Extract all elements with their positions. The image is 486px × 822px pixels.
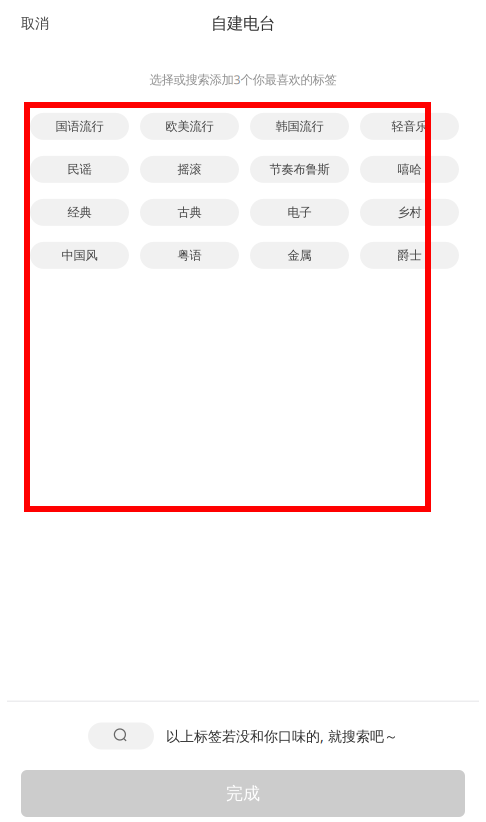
button[interactable]: 欧美流行 xyxy=(140,113,239,140)
staticText: 古典 xyxy=(177,205,201,220)
button[interactable]: 摇滚 xyxy=(140,156,239,183)
staticText: 爵士 xyxy=(397,248,421,263)
staticText: 电子 xyxy=(287,205,311,220)
staticText: 以上标签若没和你口味的, 就搜索吧～ xyxy=(166,726,398,746)
button[interactable]: 节奏布鲁斯 xyxy=(250,156,349,183)
staticText: 自建电台 xyxy=(211,13,275,34)
button[interactable]: 嘻哈 xyxy=(360,156,459,183)
staticText: 金属 xyxy=(287,248,311,263)
button[interactable]: 金属 xyxy=(250,242,349,269)
staticText: 中国风 xyxy=(61,248,97,263)
button[interactable]: 乡村 xyxy=(360,199,459,226)
staticText: 完成 xyxy=(226,783,260,804)
staticText: 欧美流行 xyxy=(165,119,213,134)
staticText: 经典 xyxy=(67,205,91,220)
button[interactable]: 经典 xyxy=(30,199,129,226)
staticText: 摇滚 xyxy=(177,162,201,177)
staticText: 轻音乐 xyxy=(391,119,427,134)
button[interactable]: 民谣 xyxy=(30,156,129,183)
staticText: 取消 xyxy=(21,15,49,32)
staticText: 嘻哈 xyxy=(397,162,421,177)
button[interactable]: 取消 xyxy=(13,9,57,38)
button[interactable]: 爵士 xyxy=(360,242,459,269)
button[interactable]: 轻音乐 xyxy=(360,113,459,140)
staticText: 国语流行 xyxy=(55,119,103,134)
button[interactable]: 完成 xyxy=(21,770,465,817)
staticText: 节奏布鲁斯 xyxy=(269,162,329,177)
button[interactable]: 国语流行 xyxy=(30,113,129,140)
button[interactable]: 搜索标签 xyxy=(88,702,398,770)
button[interactable]: 古典 xyxy=(140,199,239,226)
staticText: 粤语 xyxy=(177,248,201,263)
staticText: 乡村 xyxy=(397,205,421,220)
button[interactable]: 粤语 xyxy=(140,242,239,269)
staticText: 选择或搜索添加3个你最喜欢的标签 xyxy=(149,71,336,88)
button[interactable]: 中国风 xyxy=(30,242,129,269)
staticText: 韩国流行 xyxy=(275,119,323,134)
button[interactable]: 电子 xyxy=(250,199,349,226)
staticText: 民谣 xyxy=(67,162,91,177)
button[interactable]: 韩国流行 xyxy=(250,113,349,140)
